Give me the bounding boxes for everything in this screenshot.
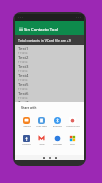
staticText: 123456 [18, 88, 28, 90]
button[interactable]: Test2 [15, 54, 84, 63]
staticText: Test7 [18, 99, 29, 105]
staticText: Gmail [39, 143, 45, 146]
staticText: 123456 [18, 97, 28, 99]
staticText: Total contacts in VCard file are +9 [18, 38, 71, 43]
staticText: 123456 [18, 79, 28, 81]
button[interactable]: Gmail [34, 135, 49, 146]
button[interactable]: Convert to PDF [65, 117, 80, 128]
staticText: Test2 [18, 54, 29, 60]
staticText: Share with [21, 106, 37, 110]
staticText: Excel [70, 143, 75, 146]
other: Open navigation menu [19, 27, 23, 31]
staticText: Facebook [22, 143, 31, 146]
button[interactable]: Bluetooth [50, 117, 65, 128]
button[interactable]: Test4 [15, 72, 84, 81]
staticText: Mensaje [23, 125, 31, 128]
button[interactable]: Recents [55, 157, 57, 159]
staticText: Test3 [18, 63, 29, 69]
staticText: Messages [53, 143, 62, 146]
button[interactable]: Test7 [15, 99, 84, 108]
button[interactable]: Active Sheet [34, 117, 49, 128]
staticText: Test6 [18, 90, 29, 96]
staticText: 123456 [18, 70, 28, 72]
button[interactable]: Test5 [15, 81, 84, 90]
button[interactable]: Excel [65, 135, 80, 146]
staticText: 123456 [18, 61, 28, 63]
button[interactable]: Test1 [15, 45, 84, 54]
button[interactable]: Back [43, 157, 45, 159]
button[interactable]: Mensaje [19, 117, 34, 128]
button[interactable]: Open navigation menu [15, 21, 84, 35]
button[interactable]: Messages [50, 135, 65, 146]
staticText: Test5 [18, 81, 29, 87]
button[interactable]: Facebook [19, 135, 34, 146]
staticText: Test4 [18, 72, 29, 78]
staticText: Test1 [18, 45, 29, 51]
button[interactable]: Test6 [15, 90, 84, 99]
staticText: Bluetooth [53, 125, 62, 128]
staticText: 123456 [18, 52, 28, 54]
staticText: 123456 [18, 106, 28, 108]
button[interactable]: Test3 [15, 63, 84, 72]
staticText: Convert to PDF [66, 125, 80, 128]
staticText: Active Sheet [36, 125, 47, 128]
staticText: Sin Contacto Tool [24, 27, 59, 33]
